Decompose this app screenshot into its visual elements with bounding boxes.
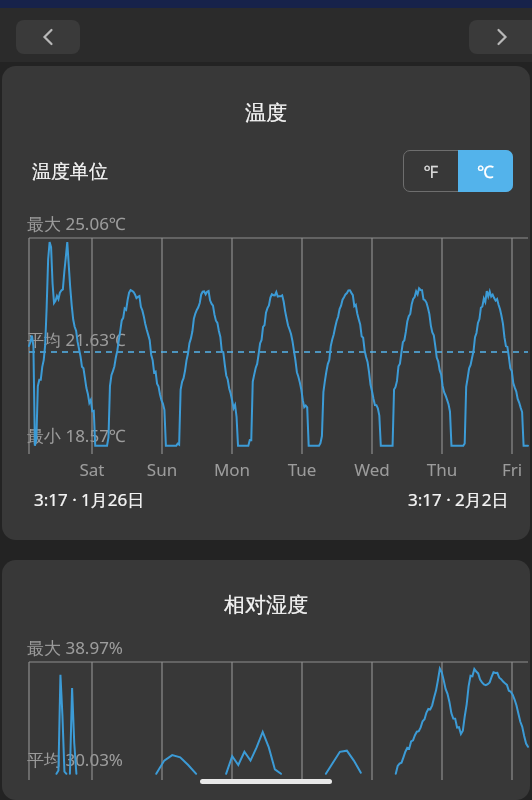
staticText: 温度单位: [32, 160, 108, 184]
staticText: Tue: [262, 458, 342, 481]
button[interactable]: ℃: [458, 150, 513, 192]
staticText: 最大 25.06℃: [27, 212, 126, 235]
staticText: ℃: [458, 160, 513, 183]
staticText: Fri: [472, 458, 530, 481]
staticText: 平均 30.03%: [27, 748, 123, 771]
staticText: Sat: [52, 458, 132, 481]
staticText: 最小 18.57℃: [27, 424, 126, 447]
staticText: Sun: [122, 458, 202, 481]
button[interactable]: ℉: [404, 151, 458, 191]
staticText: 温度: [2, 100, 530, 126]
staticText: 3:17 · 1月26日: [34, 488, 145, 511]
staticText: Mon: [192, 458, 272, 481]
staticText: 平均 21.63℃: [27, 328, 126, 351]
staticText: 相对湿度: [2, 592, 530, 618]
button[interactable]: Previous: [16, 20, 80, 54]
staticText: Wed: [332, 458, 412, 481]
button[interactable]: Next: [469, 20, 532, 54]
staticText: 最大 38.97%: [27, 636, 123, 659]
staticText: ℉: [404, 160, 458, 183]
staticText: Thu: [402, 458, 482, 481]
staticText: 3:17 · 2月2日: [408, 488, 509, 511]
